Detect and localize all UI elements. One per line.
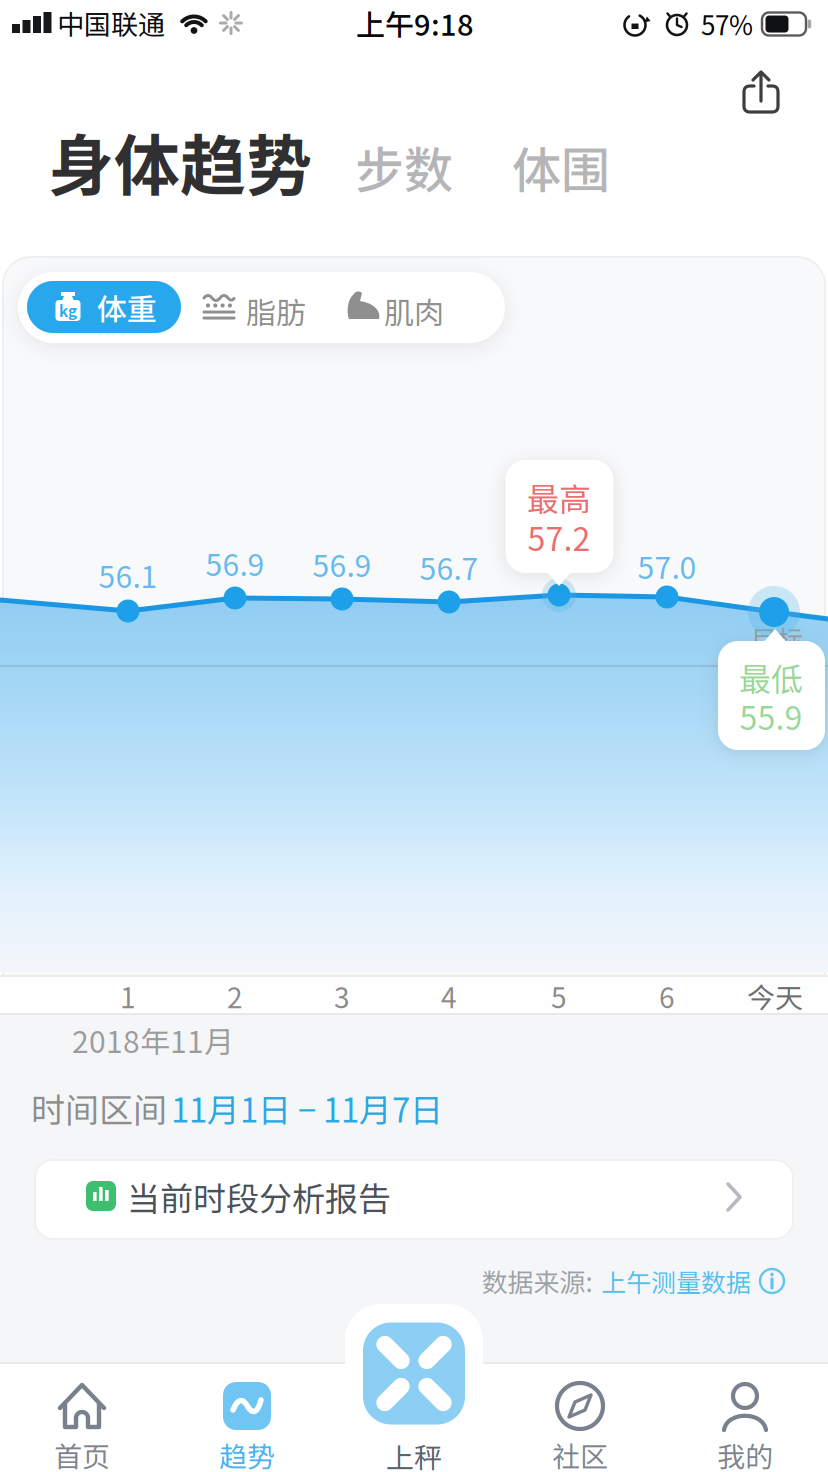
- staticText: 步数: [355, 131, 453, 202]
- staticText: 55.9: [739, 693, 802, 739]
- staticText: 时间区间: [31, 1083, 167, 1133]
- staticText: 56.1: [98, 553, 157, 597]
- staticText: 当前时段分析报告: [127, 1173, 391, 1220]
- staticText: 体围: [512, 131, 610, 202]
- button[interactable]: 11月1日 − 11月7日: [171, 1084, 443, 1132]
- staticText: 56.9: [312, 542, 371, 586]
- staticText: 最高: [527, 474, 591, 520]
- button[interactable]: 脂肪: [183, 283, 313, 331]
- staticText: 上秤: [386, 1436, 442, 1472]
- staticText: 数据来源:: [481, 1262, 592, 1300]
- button[interactable]: 社区: [520, 1366, 640, 1472]
- staticText: 脂肪: [246, 289, 306, 333]
- button[interactable]: 趋势: [187, 1366, 307, 1472]
- staticText: 今天: [747, 976, 803, 1016]
- staticText: 2018年11月: [72, 1018, 234, 1062]
- button[interactable]: 步数: [355, 131, 453, 202]
- button[interactable]: 首页: [22, 1366, 142, 1472]
- staticText: 56.9: [205, 541, 264, 585]
- button[interactable]: kg: [27, 281, 181, 333]
- button[interactable]: 上秤: [348, 1300, 480, 1472]
- button[interactable]: 当前时段分析报告: [35, 1160, 793, 1239]
- staticText: 1: [120, 976, 136, 1016]
- staticText: 社区: [552, 1435, 608, 1472]
- staticText: 趋势: [219, 1435, 275, 1472]
- staticText: 3: [334, 976, 350, 1016]
- staticText: 体重: [97, 286, 157, 329]
- button[interactable]: 分享: [740, 66, 782, 118]
- staticText: 身体趋势: [48, 113, 312, 209]
- staticText: 11月1日 − 11月7日: [171, 1084, 443, 1132]
- button[interactable]: 肌肉: [325, 283, 459, 331]
- staticText: 57%: [701, 5, 753, 43]
- staticText: 4: [441, 976, 457, 1016]
- staticText: 2: [227, 976, 243, 1016]
- staticText: 首页: [54, 1435, 110, 1472]
- button[interactable]: 上午测量数据: [590, 1259, 790, 1303]
- staticText: 6: [659, 976, 675, 1016]
- staticText: 我的: [717, 1435, 773, 1472]
- staticText: kg: [59, 300, 77, 321]
- staticText: 目标: [751, 619, 803, 657]
- staticText: 5: [551, 976, 567, 1016]
- staticText: 最低: [739, 654, 803, 700]
- staticText: 57.0: [637, 544, 696, 588]
- button[interactable]: 体围: [512, 131, 610, 202]
- staticText: 56.7: [419, 545, 478, 589]
- staticText: 中国联通: [57, 3, 165, 43]
- staticText: 57.2: [527, 514, 590, 560]
- staticText: 上午9:18: [356, 2, 474, 44]
- button[interactable]: 我的: [685, 1366, 805, 1472]
- staticText: 上午测量数据: [601, 1263, 751, 1299]
- staticText: 肌肉: [384, 289, 444, 333]
